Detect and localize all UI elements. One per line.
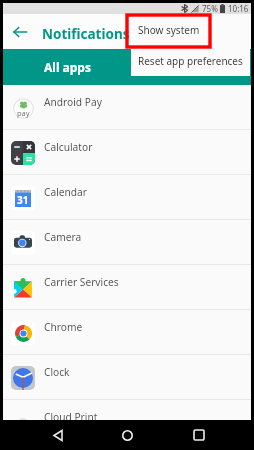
staticText: Reset app preferences — [138, 54, 243, 68]
button[interactable]: Back — [3, 15, 37, 49]
staticText: Calendar — [44, 185, 88, 199]
button[interactable]: Back — [28, 420, 87, 450]
button[interactable]: All apps — [3, 49, 132, 85]
staticText: pay — [17, 108, 30, 118]
staticText: Android Pay — [44, 95, 102, 109]
staticText: 31 — [17, 193, 29, 207]
button[interactable]: Clock — [3, 355, 251, 400]
staticText: Clock — [44, 365, 70, 379]
staticText: Cloud Print — [44, 410, 98, 420]
button[interactable]: Cloud Print — [3, 400, 251, 420]
button[interactable]: Calculator — [3, 130, 251, 175]
staticText: 75% — [202, 3, 218, 14]
staticText: Chrome — [44, 320, 83, 334]
staticText: Notifications — [42, 25, 130, 43]
staticText: All apps — [44, 59, 91, 75]
staticText: Show system — [138, 23, 200, 37]
staticText: Carrier Services — [44, 275, 119, 289]
staticText: 10:16 — [228, 3, 249, 14]
button[interactable]: Home — [98, 420, 157, 450]
button[interactable]: 31 — [3, 175, 251, 220]
button[interactable]: Chrome — [3, 310, 251, 355]
button[interactable]: pay — [3, 85, 251, 130]
button[interactable]: Camera — [3, 220, 251, 265]
button[interactable]: Show system — [131, 15, 250, 45]
button[interactable]: Carrier Services — [3, 265, 251, 310]
staticText: Camera — [44, 230, 82, 244]
staticText: Calculator — [44, 140, 93, 154]
button[interactable]: Recents — [169, 420, 228, 450]
button[interactable]: Reset app preferences — [131, 45, 250, 76]
